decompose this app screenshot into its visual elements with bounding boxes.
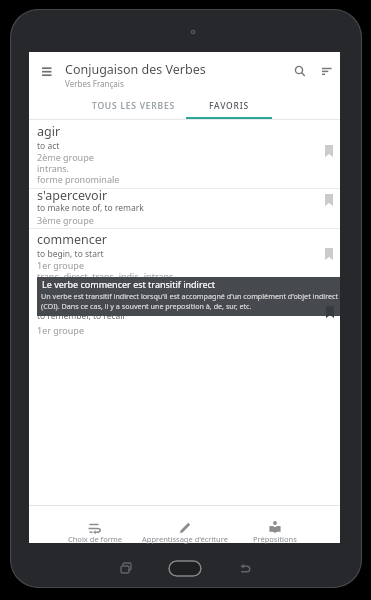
- staticText: commencer: [37, 231, 107, 248]
- staticText: Prépositions: [253, 534, 297, 544]
- staticText: to remember, to recall: [37, 310, 125, 322]
- staticText: 2ème groupe: [37, 151, 94, 163]
- button[interactable]: TOUS LES VERBES: [81, 92, 186, 119]
- staticText: 1er groupe: [37, 259, 84, 271]
- staticText: Choix de forme: [68, 534, 123, 544]
- button[interactable]: [116, 558, 136, 578]
- button[interactable]: [35, 60, 59, 84]
- staticText: 3ème groupe: [37, 214, 94, 226]
- button[interactable]: FAVORIS: [186, 92, 272, 119]
- button[interactable]: [29, 120, 340, 188]
- button[interactable]: Prépositions: [230, 505, 320, 543]
- button[interactable]: Choix de forme: [50, 505, 140, 543]
- staticText: TOUS LES VERBES: [92, 100, 175, 112]
- staticText: Un verbe est transitif indirect lorsqu'i…: [41, 291, 339, 311]
- staticText: trans. direct trans. indir. intrans.: [37, 270, 176, 282]
- button[interactable]: [288, 58, 312, 82]
- staticText: to make note of, to remark: [37, 202, 144, 214]
- staticText: forme pronominale: [37, 173, 120, 185]
- staticText: to act: [37, 140, 60, 152]
- staticText: s'apercevoir: [37, 187, 108, 204]
- button[interactable]: [236, 558, 256, 578]
- staticText: agir: [37, 123, 61, 140]
- staticText: intrans.: [37, 162, 70, 174]
- staticText: Le verbe commencer est transitif indirec…: [42, 278, 216, 290]
- staticText: Apprentissage d'écriture: [142, 534, 228, 544]
- button[interactable]: Apprentissage d'écriture: [140, 505, 230, 543]
- button[interactable]: [168, 560, 202, 577]
- button[interactable]: [29, 188, 340, 228]
- button[interactable]: [314, 58, 338, 82]
- button[interactable]: [29, 228, 340, 280]
- staticText: FAVORIS: [209, 100, 250, 112]
- staticText: Verbes Français: [65, 78, 124, 89]
- staticText: 1er groupe: [37, 324, 84, 336]
- staticText: Conjugaison des Verbes: [65, 61, 206, 78]
- staticText: to begin, to start: [37, 248, 104, 260]
